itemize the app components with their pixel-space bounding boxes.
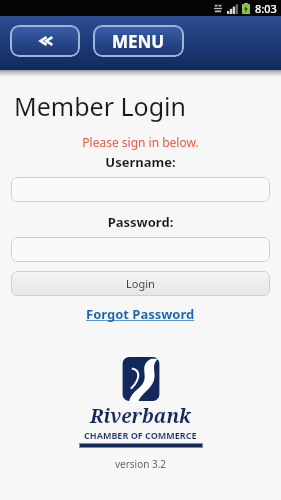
staticText: Member Login <box>14 89 186 123</box>
staticText: version 3.2 <box>0 457 281 471</box>
staticText: CHAMBER OF COMMERCE <box>84 429 197 441</box>
staticText: Please sign in below. <box>0 134 281 150</box>
staticText: Riverbank <box>90 403 191 429</box>
button[interactable]: MENU <box>93 25 184 57</box>
button[interactable]: Back <box>10 25 80 57</box>
staticText: 8:03 <box>255 1 277 16</box>
staticText: Forgot Password <box>86 305 195 323</box>
staticText: Username: <box>0 153 281 171</box>
button[interactable]: Text field <box>11 237 270 262</box>
button[interactable]: Forgot Password <box>80 303 201 325</box>
button[interactable]: Login <box>11 271 270 296</box>
button[interactable]: Text field <box>11 177 270 202</box>
staticText: Login <box>126 276 155 291</box>
staticText: Password: <box>0 213 281 231</box>
staticText: MENU <box>112 30 165 53</box>
